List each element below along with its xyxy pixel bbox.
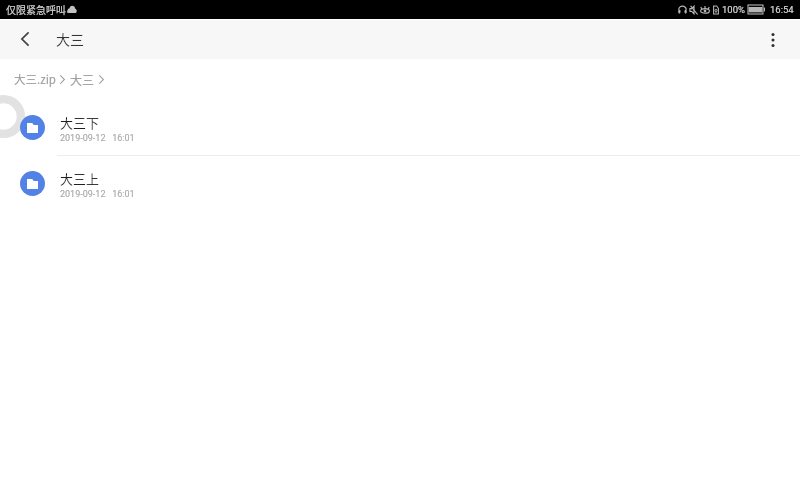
button[interactable]: 大三 [70, 71, 95, 88]
staticText: 16:54 [770, 4, 794, 15]
staticText: 仅限紧急呼叫 [6, 2, 66, 16]
staticText: 2019-09-12 16:01 [60, 189, 135, 200]
staticText: 100% [722, 4, 745, 15]
staticText: 大三下 [60, 113, 100, 132]
button[interactable]: 大三.zip [14, 71, 56, 88]
staticText: 2019-09-12 16:01 [60, 133, 135, 144]
staticText: 大三 [56, 29, 84, 49]
button[interactable]: More options [761, 28, 785, 52]
button[interactable]: Back [12, 26, 38, 52]
button[interactable]: 大三下 [0, 100, 800, 155]
button[interactable]: 大三上 [0, 156, 800, 211]
staticText: 大三上 [60, 169, 100, 188]
